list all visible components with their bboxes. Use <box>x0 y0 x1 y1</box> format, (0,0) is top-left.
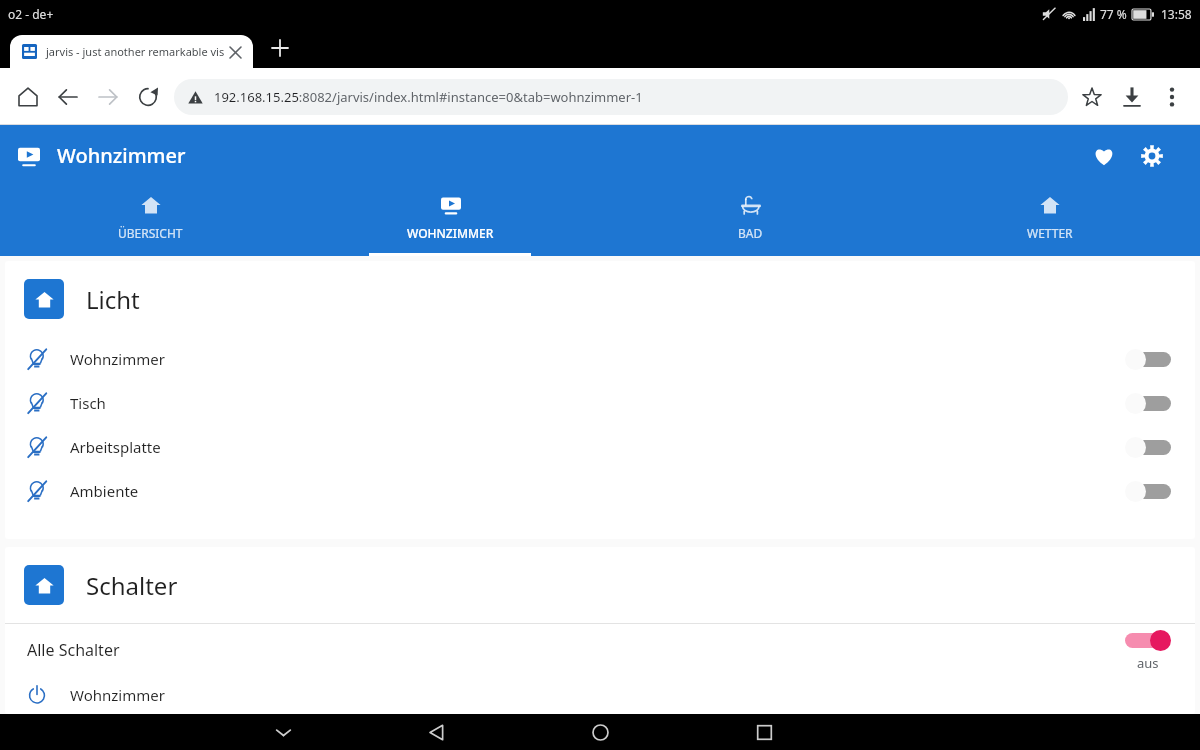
button[interactable]: Toggle off <box>1125 347 1171 371</box>
button[interactable]: Wohnzimmer <box>18 142 186 169</box>
button[interactable]: Licht <box>5 261 1195 337</box>
button[interactable]: New tab <box>264 32 296 64</box>
button[interactable]: Home <box>8 77 48 117</box>
button[interactable]: Favorites <box>1082 134 1126 178</box>
button[interactable]: Arbeitsplatte <box>5 425 1195 469</box>
button[interactable]: Wohnzimmer <box>5 337 1195 381</box>
staticText: Alle Schalter <box>27 639 1125 661</box>
button[interactable]: BAD <box>600 186 900 256</box>
button[interactable]: Tisch <box>5 381 1195 425</box>
button[interactable]: Reload <box>128 77 168 117</box>
staticText: jarvis - just another remarkable vis <box>46 44 225 59</box>
button[interactable]: Ambiente <box>5 469 1195 513</box>
staticText: o2 - de+ <box>8 6 54 22</box>
button[interactable]: Close tab <box>225 42 245 62</box>
button[interactable]: Toggle off <box>1125 479 1171 503</box>
button[interactable]: 192.168.15.25:8082/jarvis/index.html#ins… <box>174 79 1068 115</box>
button[interactable]: Toggle off <box>1125 435 1171 459</box>
button[interactable]: Back <box>48 77 88 117</box>
button[interactable]: Hide keyboard <box>265 714 301 750</box>
button[interactable]: Recents <box>746 714 782 750</box>
staticText: 77 % <box>1100 6 1127 22</box>
staticText: Tisch <box>70 393 1125 413</box>
staticText: Ambiente <box>70 481 1125 501</box>
button[interactable]: Forward <box>88 77 128 117</box>
button[interactable]: More options <box>1152 77 1192 117</box>
staticText: aus <box>1137 654 1159 672</box>
staticText: Licht <box>86 283 140 316</box>
staticText: Schalter <box>86 569 178 602</box>
button[interactable]: Bookmark <box>1072 77 1112 117</box>
button[interactable]: Wohnzimmer <box>5 676 1195 714</box>
staticText: Wohnzimmer <box>57 142 186 169</box>
button[interactable]: Alle Schalter <box>5 624 1195 676</box>
staticText: 192.168.15.25:8082/jarvis/index.html#ins… <box>214 88 643 106</box>
staticText: Wohnzimmer <box>70 349 1125 369</box>
button[interactable]: jarvis - just another remarkable vis <box>10 35 253 68</box>
button[interactable]: Schalter <box>5 547 1195 623</box>
staticText: WOHNZIMMER <box>407 225 494 241</box>
button[interactable]: Toggle off <box>1125 391 1171 415</box>
staticText: WETTER <box>1027 225 1073 241</box>
staticText: BAD <box>738 225 763 241</box>
button[interactable]: WETTER <box>900 186 1200 256</box>
staticText: ÜBERSICHT <box>118 225 183 241</box>
button[interactable]: Back <box>418 714 454 750</box>
button[interactable]: WOHNZIMMER <box>300 186 600 256</box>
button[interactable]: Download <box>1112 77 1152 117</box>
button[interactable]: Toggle on <box>1125 628 1171 652</box>
button[interactable]: Settings <box>1130 134 1174 178</box>
button[interactable]: Home <box>582 714 618 750</box>
staticText: Wohnzimmer <box>70 685 1171 705</box>
button[interactable]: ÜBERSICHT <box>0 186 300 256</box>
staticText: 13:58 <box>1161 6 1192 22</box>
staticText: Arbeitsplatte <box>70 437 1125 457</box>
